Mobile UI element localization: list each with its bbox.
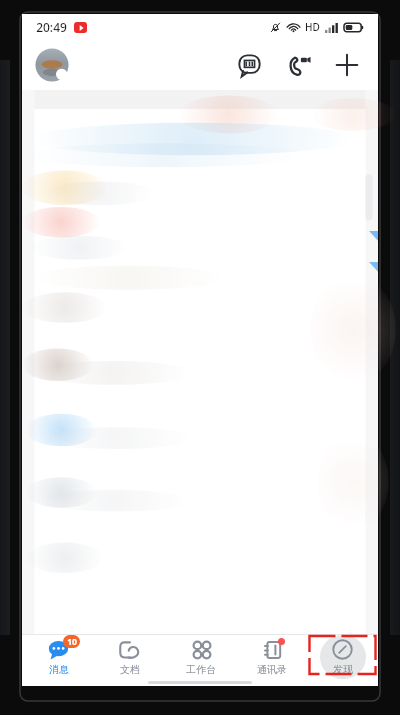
button[interactable]: 通讯录	[236, 635, 307, 679]
staticText: 通讯录	[257, 663, 287, 676]
button[interactable]: Call	[282, 48, 316, 82]
staticText: 文档	[120, 663, 140, 676]
button[interactable]: Add	[330, 48, 364, 82]
button[interactable]: Scan QR code	[232, 48, 266, 82]
button[interactable]: 工作台	[165, 635, 236, 679]
staticText: 20:49	[36, 19, 67, 35]
staticText: 10	[67, 636, 77, 648]
staticText: 消息	[49, 663, 69, 676]
button[interactable]: 发现	[307, 635, 378, 679]
staticText: 发现	[333, 663, 353, 676]
button[interactable]	[34, 47, 70, 83]
button[interactable]: 10	[22, 635, 94, 679]
staticText: HD	[305, 20, 320, 34]
staticText: 工作台	[186, 663, 216, 676]
button[interactable]: 文档	[94, 635, 165, 679]
